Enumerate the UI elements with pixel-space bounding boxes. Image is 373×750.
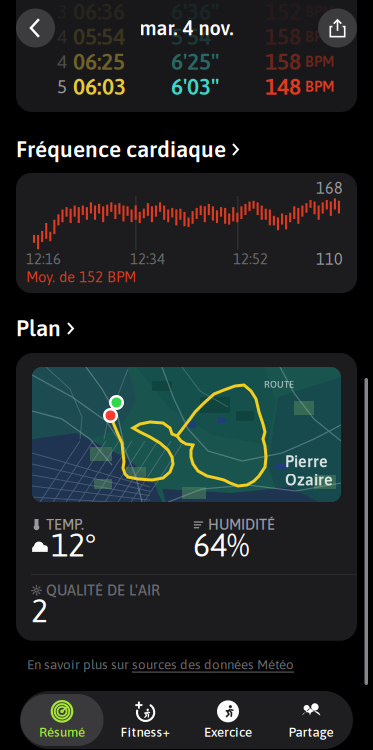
staticText: 158 — [265, 23, 301, 49]
staticText: 05:54 — [73, 23, 125, 49]
staticText: 12:34 — [130, 251, 165, 267]
staticText: Ozaire — [285, 471, 333, 489]
button[interactable]: sources des données Météo — [132, 657, 294, 672]
staticText: 12:52 — [233, 251, 268, 267]
staticText: 6'03" — [171, 73, 219, 99]
button[interactable]: Fitness+ — [103, 694, 186, 746]
staticText: Moy. de 152 BPM — [26, 269, 136, 285]
staticText: 6'25" — [171, 48, 219, 74]
staticText: mar. 4 nov. — [139, 16, 233, 39]
staticText: BPM — [305, 78, 334, 95]
staticText: 5'54" — [171, 23, 219, 49]
staticText: Partage — [288, 724, 333, 740]
staticText: BPM — [305, 28, 334, 45]
staticText: 06:36 — [73, 0, 125, 24]
staticText: 2 — [31, 592, 48, 629]
staticText: En savoir plus sur — [27, 657, 132, 672]
staticText: 4 — [57, 26, 67, 47]
staticText: 12° — [51, 527, 96, 563]
staticText: Fitness+ — [120, 724, 169, 740]
button[interactable]: Fréquence cardiaque — [0, 138, 373, 160]
button[interactable]: Retour — [16, 8, 55, 47]
staticText: 168 — [316, 179, 343, 197]
staticText: Plan — [16, 315, 61, 341]
staticText: 148 — [265, 73, 301, 99]
staticText: 06:03 — [73, 73, 126, 99]
staticText: 110 — [316, 250, 343, 268]
staticText: 6'36" — [171, 0, 219, 24]
staticText: Résumé — [39, 724, 85, 740]
staticText: BPM — [305, 53, 334, 70]
staticText: sources des données Météo — [132, 657, 294, 672]
staticText: 5 — [57, 76, 67, 97]
staticText: 06:25 — [73, 48, 125, 74]
staticText: 64% — [193, 527, 249, 563]
button[interactable]: Plan — [0, 317, 373, 339]
staticText: ROUTE — [264, 379, 294, 390]
staticText: HUMIDITÉ — [208, 516, 275, 533]
staticText: QUALITÉ DE L'AIR — [46, 582, 160, 599]
staticText: TEMP. — [46, 516, 84, 533]
staticText: 158 — [265, 48, 301, 74]
staticText: BPM — [305, 3, 334, 20]
staticText: 152 — [265, 0, 301, 24]
button[interactable]: Partage — [269, 694, 352, 746]
staticText: Fréquence cardiaque — [16, 136, 226, 162]
button[interactable]: Résumé — [20, 694, 103, 746]
button[interactable]: Exercice — [186, 694, 269, 746]
staticText: 4 — [57, 51, 67, 72]
staticText: 12:16 — [26, 251, 61, 267]
button[interactable]: Partager — [318, 8, 357, 47]
staticText: Exercice — [204, 724, 252, 740]
staticText: Pierre — [285, 452, 328, 471]
